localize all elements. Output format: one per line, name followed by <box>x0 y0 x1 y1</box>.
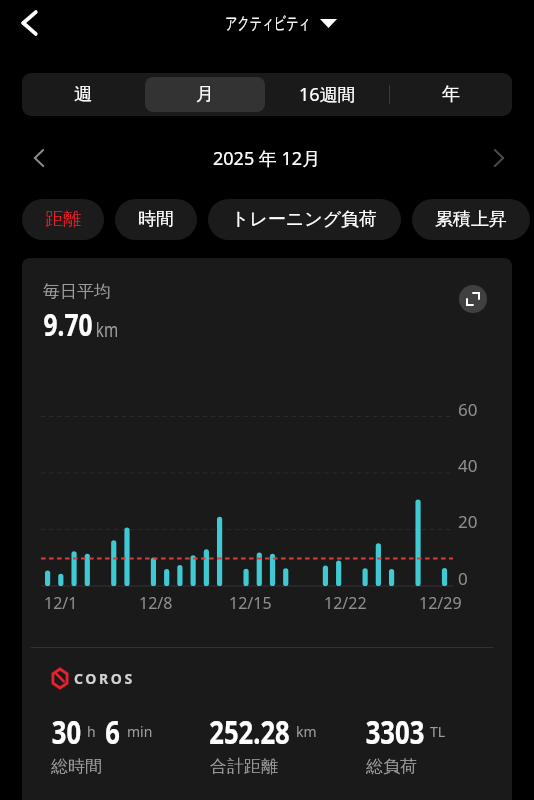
staticText: 0 <box>458 567 468 590</box>
staticText: 合計距離 <box>210 756 278 777</box>
staticText: km <box>96 317 118 343</box>
staticText: COROS <box>74 669 135 688</box>
staticText: 総負荷 <box>366 756 417 777</box>
staticText: 2025 年 12月 <box>213 146 321 171</box>
staticText: 12/29 <box>419 592 462 614</box>
button[interactable]: Back <box>7 1 51 45</box>
staticText: 20 <box>458 510 478 533</box>
button[interactable]: 累積上昇 <box>412 199 530 240</box>
staticText: 12/22 <box>324 592 367 614</box>
staticText: 30 <box>52 710 81 754</box>
button[interactable]: 週 <box>23 77 143 112</box>
staticText: h <box>87 722 96 741</box>
staticText: 9.70 <box>43 303 92 345</box>
staticText: 年 <box>442 83 460 106</box>
staticText: 毎日平均 <box>43 281 111 302</box>
staticText: 12/8 <box>139 592 173 614</box>
button[interactable]: 時間 <box>115 199 197 240</box>
staticText: 3303 <box>365 710 425 754</box>
button[interactable]: 月 <box>145 77 265 112</box>
staticText: 252.28 <box>209 710 290 754</box>
button[interactable]: 年 <box>390 77 511 112</box>
staticText: 60 <box>458 398 478 421</box>
button[interactable]: 距離 <box>22 199 104 240</box>
staticText: 12/15 <box>229 592 272 614</box>
staticText: 累積上昇 <box>435 208 507 231</box>
button[interactable]: Expand chart <box>459 285 487 313</box>
staticText: アクティビティ <box>225 13 311 34</box>
staticText: min <box>127 722 153 741</box>
staticText: km <box>296 722 317 741</box>
staticText: 総時間 <box>51 756 102 777</box>
button[interactable]: アクティビティ <box>227 13 337 34</box>
staticText: 12/1 <box>44 592 78 614</box>
staticText: 16週間 <box>299 82 356 107</box>
staticText: 40 <box>458 454 478 477</box>
staticText: トレーニング負荷 <box>231 208 378 231</box>
button[interactable]: 16週間 <box>267 77 388 112</box>
button[interactable]: Next month <box>484 143 514 173</box>
staticText: 週 <box>74 83 92 106</box>
staticText: 距離 <box>45 208 81 231</box>
staticText: 月 <box>196 83 214 106</box>
staticText: 時間 <box>138 208 174 231</box>
button[interactable]: Previous month <box>24 143 54 173</box>
staticText: TL <box>430 722 446 741</box>
button[interactable]: トレーニング負荷 <box>208 199 401 240</box>
staticText: 6 <box>105 710 120 754</box>
